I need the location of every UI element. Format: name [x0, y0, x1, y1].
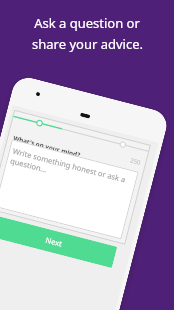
staticText: share your advice.	[32, 35, 143, 53]
staticText: What's on your mind?	[12, 133, 81, 159]
button[interactable]: Write something honest or ask a question…	[0, 139, 139, 240]
staticText: Ask a question or	[34, 14, 140, 32]
staticText: 250	[129, 156, 142, 167]
button[interactable]: Next	[0, 215, 117, 268]
staticText: Next	[45, 235, 64, 249]
staticText: Write something honest or ask a question…	[9, 146, 132, 197]
